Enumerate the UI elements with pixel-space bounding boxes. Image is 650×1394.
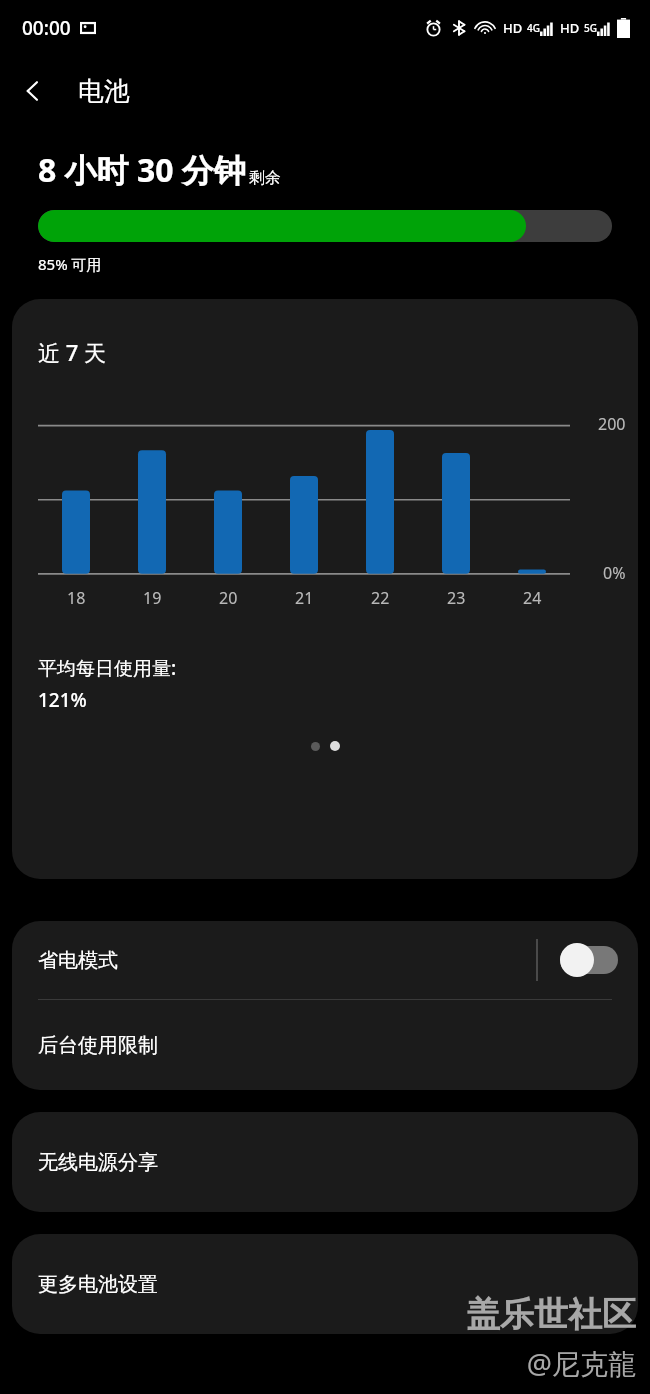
staticText: 24 bbox=[523, 587, 542, 609]
staticText: 121% bbox=[38, 687, 87, 713]
staticText: 0% bbox=[603, 562, 626, 584]
staticText: 22 bbox=[371, 587, 390, 609]
staticText: HD bbox=[560, 19, 580, 37]
button[interactable]: 省电模式 bbox=[12, 921, 638, 999]
staticText: 剩余 bbox=[249, 168, 281, 188]
button[interactable]: 后台使用限制 bbox=[12, 1000, 638, 1090]
button[interactable]: 无线电源分享 bbox=[12, 1112, 638, 1212]
button[interactable]: 省电模式开关 bbox=[560, 943, 618, 977]
staticText: 近 7 天 bbox=[38, 337, 107, 367]
staticText: 23 bbox=[447, 587, 466, 609]
staticText: 电池 bbox=[78, 75, 130, 108]
staticText: 省电模式 bbox=[38, 948, 118, 973]
staticText: 盖乐世社区 bbox=[466, 1293, 636, 1336]
staticText: @尼克龍 bbox=[526, 1344, 636, 1382]
staticText: 200 bbox=[598, 413, 626, 435]
staticText: 4G bbox=[527, 21, 540, 35]
staticText: 无线电源分享 bbox=[38, 1150, 158, 1175]
button[interactable]: 更多电池设置 bbox=[12, 1234, 638, 1334]
staticText: 21 bbox=[295, 587, 314, 609]
staticText: 18 bbox=[67, 587, 86, 609]
staticText: 平均每日使用量: bbox=[38, 655, 177, 681]
staticText: 00:00 bbox=[22, 15, 71, 41]
button[interactable]: 近 7 天 bbox=[12, 299, 638, 879]
staticText: HD bbox=[503, 19, 523, 37]
staticText: 19 bbox=[143, 587, 162, 609]
staticText: 85% 可用 bbox=[38, 254, 102, 274]
staticText: 5G bbox=[584, 21, 597, 35]
staticText: 8 小时 30 分钟 bbox=[38, 148, 246, 192]
button[interactable]: 返回 bbox=[0, 58, 66, 124]
staticText: 更多电池设置 bbox=[38, 1272, 158, 1297]
staticText: 20 bbox=[219, 587, 238, 609]
staticText: 后台使用限制 bbox=[38, 1033, 158, 1058]
